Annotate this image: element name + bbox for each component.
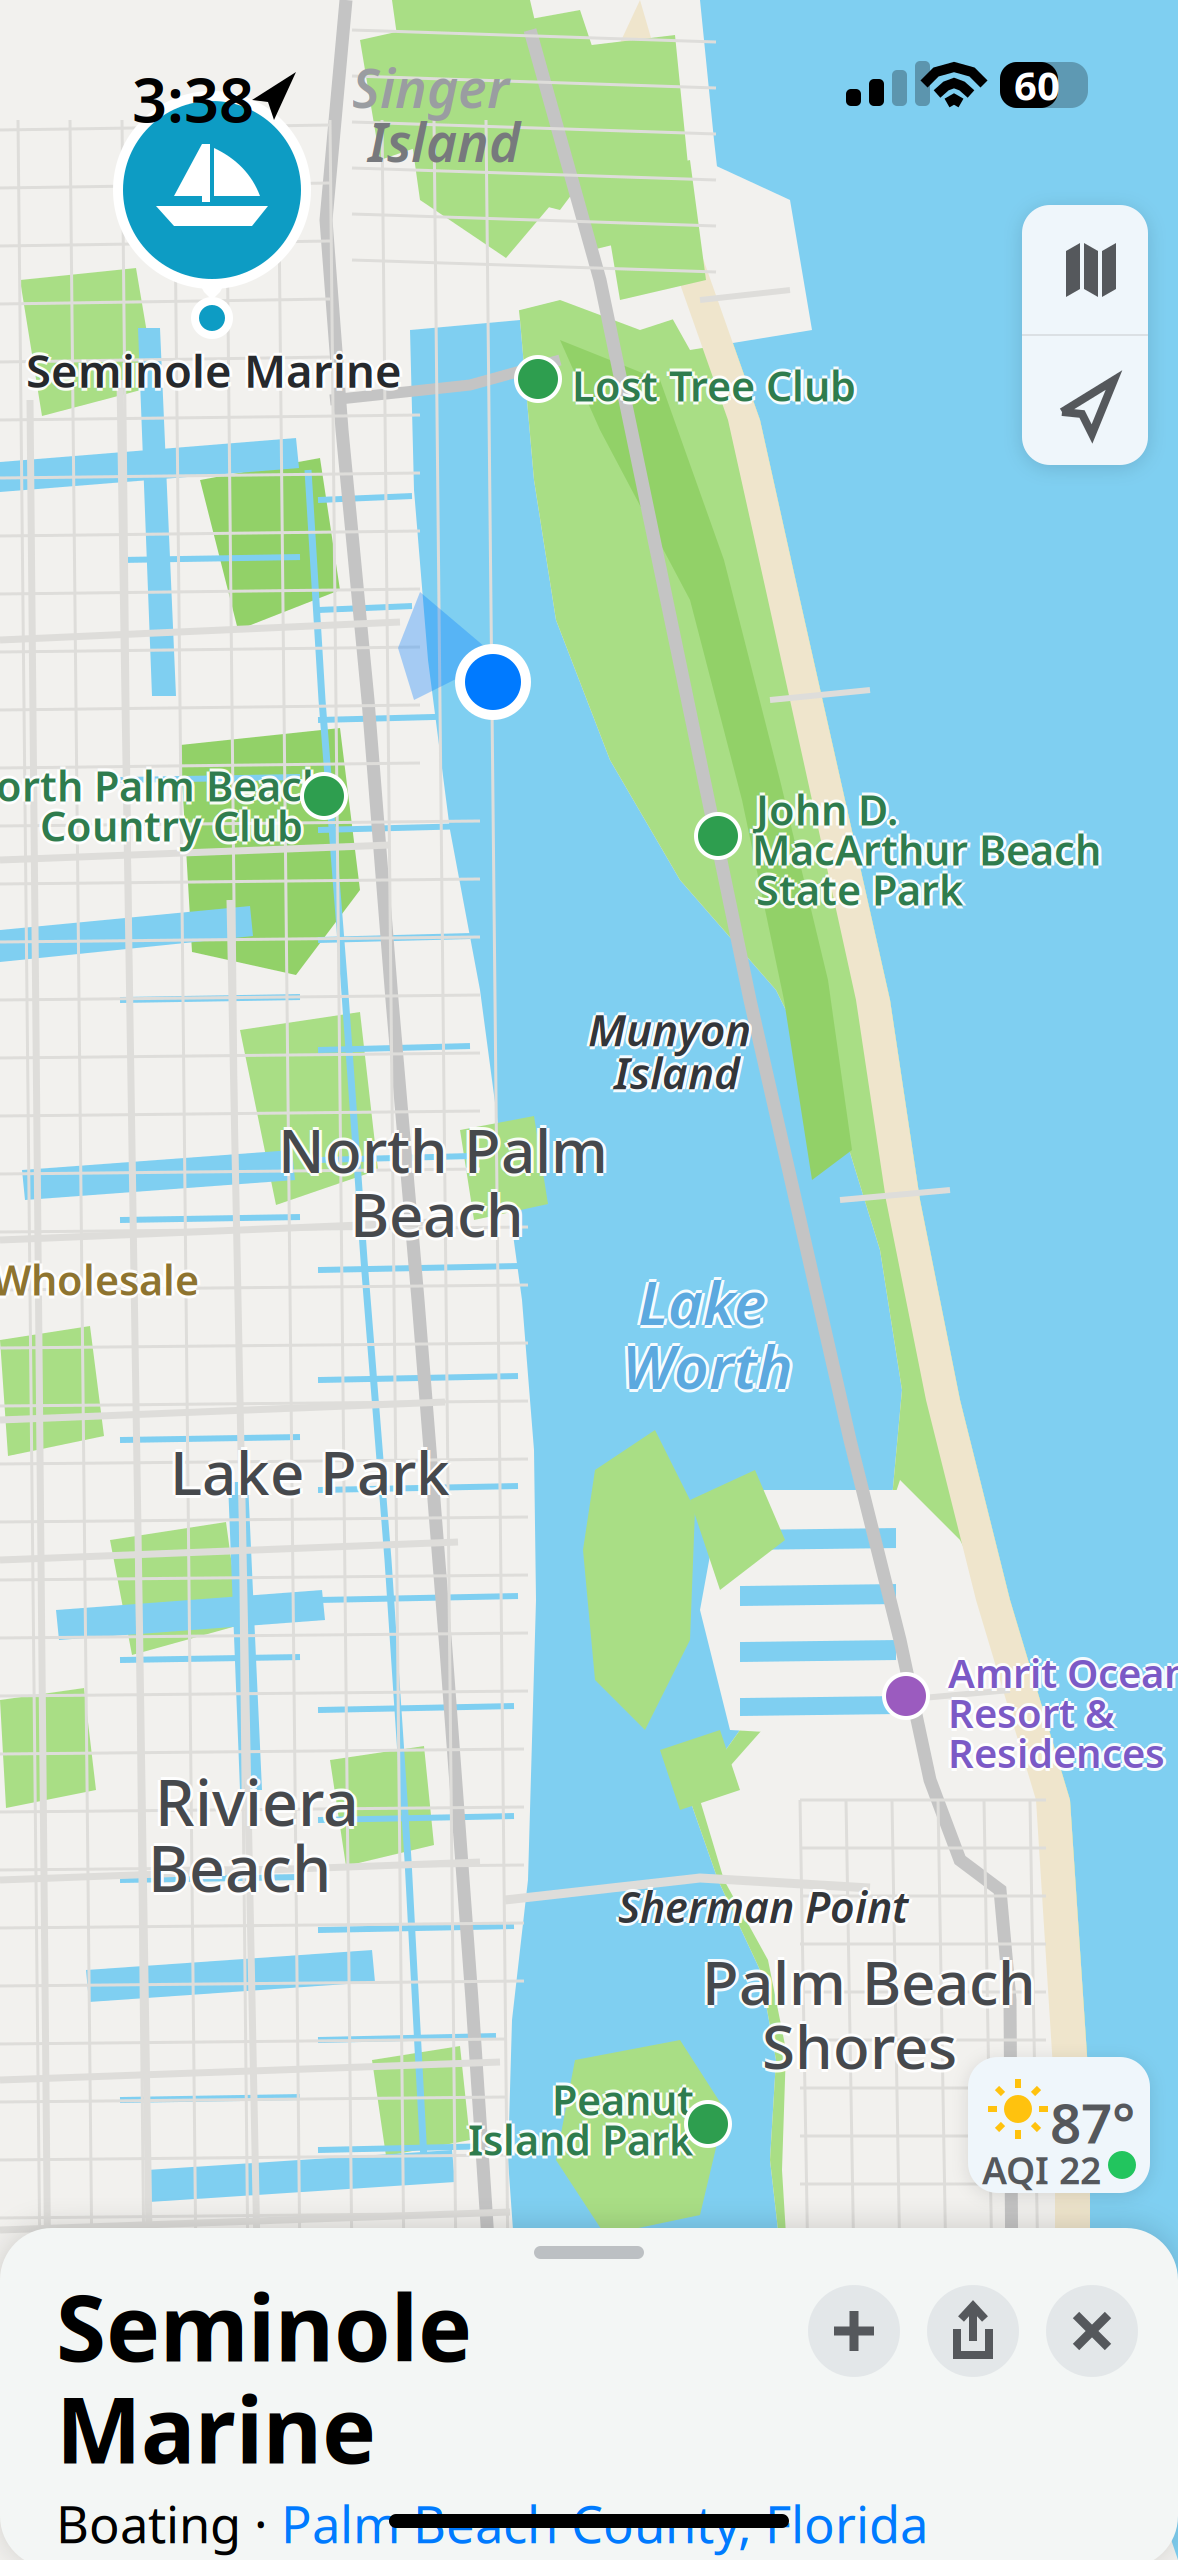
staticText: Beach (148, 1829, 331, 1912)
staticText: Peanut (555, 2072, 697, 2127)
staticText: Shores (765, 2006, 960, 2086)
staticText: Beach (350, 1171, 524, 1251)
staticText: Residences (948, 1726, 1165, 1779)
staticText: Residences (948, 1729, 1165, 1782)
staticText: Beach (350, 1174, 524, 1254)
staticText: Lake Park (167, 1432, 447, 1512)
staticText: Sherman Point (618, 1875, 908, 1932)
staticText: orth Palm Beach (0, 761, 328, 816)
staticText: Worth (619, 1326, 790, 1406)
staticText: Lost Tree Club (572, 361, 856, 416)
button[interactable]: Show current location (1022, 336, 1148, 465)
staticText: Island Park (468, 2112, 693, 2167)
staticText: North Palm (281, 1110, 611, 1190)
staticText: Shores (759, 2006, 954, 2086)
staticText: Peanut (552, 2072, 694, 2127)
staticText: Lake (638, 1259, 766, 1339)
staticText: State Park (756, 862, 963, 917)
staticText: John D. (756, 782, 898, 837)
staticText: Riviera (155, 1757, 359, 1840)
staticText: Shores (762, 2009, 957, 2089)
staticText: North Palm (278, 1107, 608, 1187)
staticText: Seminole Marine (26, 340, 402, 400)
staticText: Palm Beach (699, 1942, 1033, 2022)
staticText: Munyon (588, 1000, 751, 1058)
staticText: Island Park (465, 2112, 690, 2167)
staticText: Riviera (155, 1760, 359, 1843)
staticText: Palm Beach County, Florida (281, 2490, 928, 2557)
staticText: Lake (638, 1265, 766, 1345)
staticText: Marine (56, 2368, 376, 2488)
button[interactable]: Palm Beach County, Florida (281, 2490, 928, 2557)
staticText: Munyon (591, 1000, 754, 1058)
staticText: orth Palm Beach (0, 758, 331, 813)
staticText: Resort & (945, 1686, 1112, 1739)
staticText: MacArthur Beach (752, 822, 1101, 877)
staticText: Beach (151, 1826, 334, 1909)
staticText: Island (614, 1043, 740, 1101)
staticText: Country Club (37, 798, 300, 853)
staticText: Wholesale (0, 1249, 199, 1304)
staticText: Island (614, 1040, 740, 1098)
button[interactable]: Share (927, 2285, 1019, 2377)
button[interactable]: Weather, 87 degrees, AQI 22 (968, 2057, 1150, 2193)
staticText: Munyon (585, 1000, 748, 1058)
staticText: Riviera (155, 1763, 359, 1846)
staticText: State Park (753, 862, 960, 917)
staticText: Lost Tree Club (572, 355, 856, 410)
staticText: Country Club (40, 801, 303, 856)
staticText: Seminole (56, 2266, 472, 2386)
button[interactable]: Add (808, 2285, 900, 2377)
staticText: North Palm (278, 1113, 608, 1193)
staticText: Palm Beach (702, 1945, 1036, 2025)
staticText: Worth (622, 1323, 793, 1403)
staticText: Amrit Ocean (951, 1646, 1178, 1699)
staticText: 60 (1014, 58, 1060, 111)
staticText: Sherman Point (615, 1878, 905, 1935)
staticText: 87° (1050, 2086, 1135, 2159)
staticText: Worth (622, 1326, 793, 1406)
staticText: Seminole Marine (26, 337, 402, 397)
staticText: Palm Beach (705, 1942, 1039, 2022)
staticText: Resort & (948, 1683, 1115, 1736)
button[interactable]: Close (1046, 2285, 1138, 2377)
staticText: Lake Park (170, 1429, 450, 1509)
staticText: Island Park (468, 2109, 693, 2164)
staticText: Island (368, 106, 520, 177)
staticText: Island (611, 1043, 737, 1101)
staticText: Beach (353, 1174, 527, 1254)
staticText: Peanut (549, 2072, 691, 2127)
staticText: Peanut (552, 2075, 694, 2130)
staticText: John D. (753, 782, 895, 837)
button[interactable]: Map mode (1022, 205, 1148, 334)
staticText: Worth (625, 1326, 796, 1406)
staticText: Island (617, 1043, 743, 1101)
staticText: orth Palm Beach (0, 755, 328, 810)
staticText: Sherman Point (621, 1878, 911, 1935)
staticText: State Park (756, 859, 963, 914)
staticText: Country Club (43, 798, 306, 853)
staticText: Country Club (40, 798, 303, 853)
staticText: John D. (759, 782, 901, 837)
staticText: Seminole Marine (26, 343, 402, 403)
staticText: State Park (756, 865, 963, 920)
staticText: Resort & (948, 1689, 1115, 1742)
staticText: AQI 22 (982, 2145, 1101, 2195)
staticText: Residences (951, 1726, 1168, 1779)
staticText: MacArthur Beach (755, 822, 1104, 877)
staticText: Peanut (552, 2069, 694, 2124)
staticText: Palm Beach (702, 1939, 1036, 2019)
staticText: Palm Beach (702, 1942, 1036, 2022)
staticText: Resort & (948, 1686, 1115, 1739)
staticText: Wholesale (0, 1252, 202, 1307)
staticText: Lake (641, 1262, 769, 1342)
staticText: Lake Park (173, 1432, 453, 1512)
staticText: Sherman Point (618, 1878, 908, 1935)
staticText: 3:38 (132, 58, 254, 139)
staticText: MacArthur Beach (752, 819, 1101, 874)
staticText: Amrit Ocean (945, 1646, 1178, 1699)
staticText: Amrit Ocean (948, 1643, 1178, 1696)
staticText: Lake Park (170, 1432, 450, 1512)
staticText: Amrit Ocean (948, 1649, 1178, 1702)
staticText: Shores (762, 2006, 957, 2086)
